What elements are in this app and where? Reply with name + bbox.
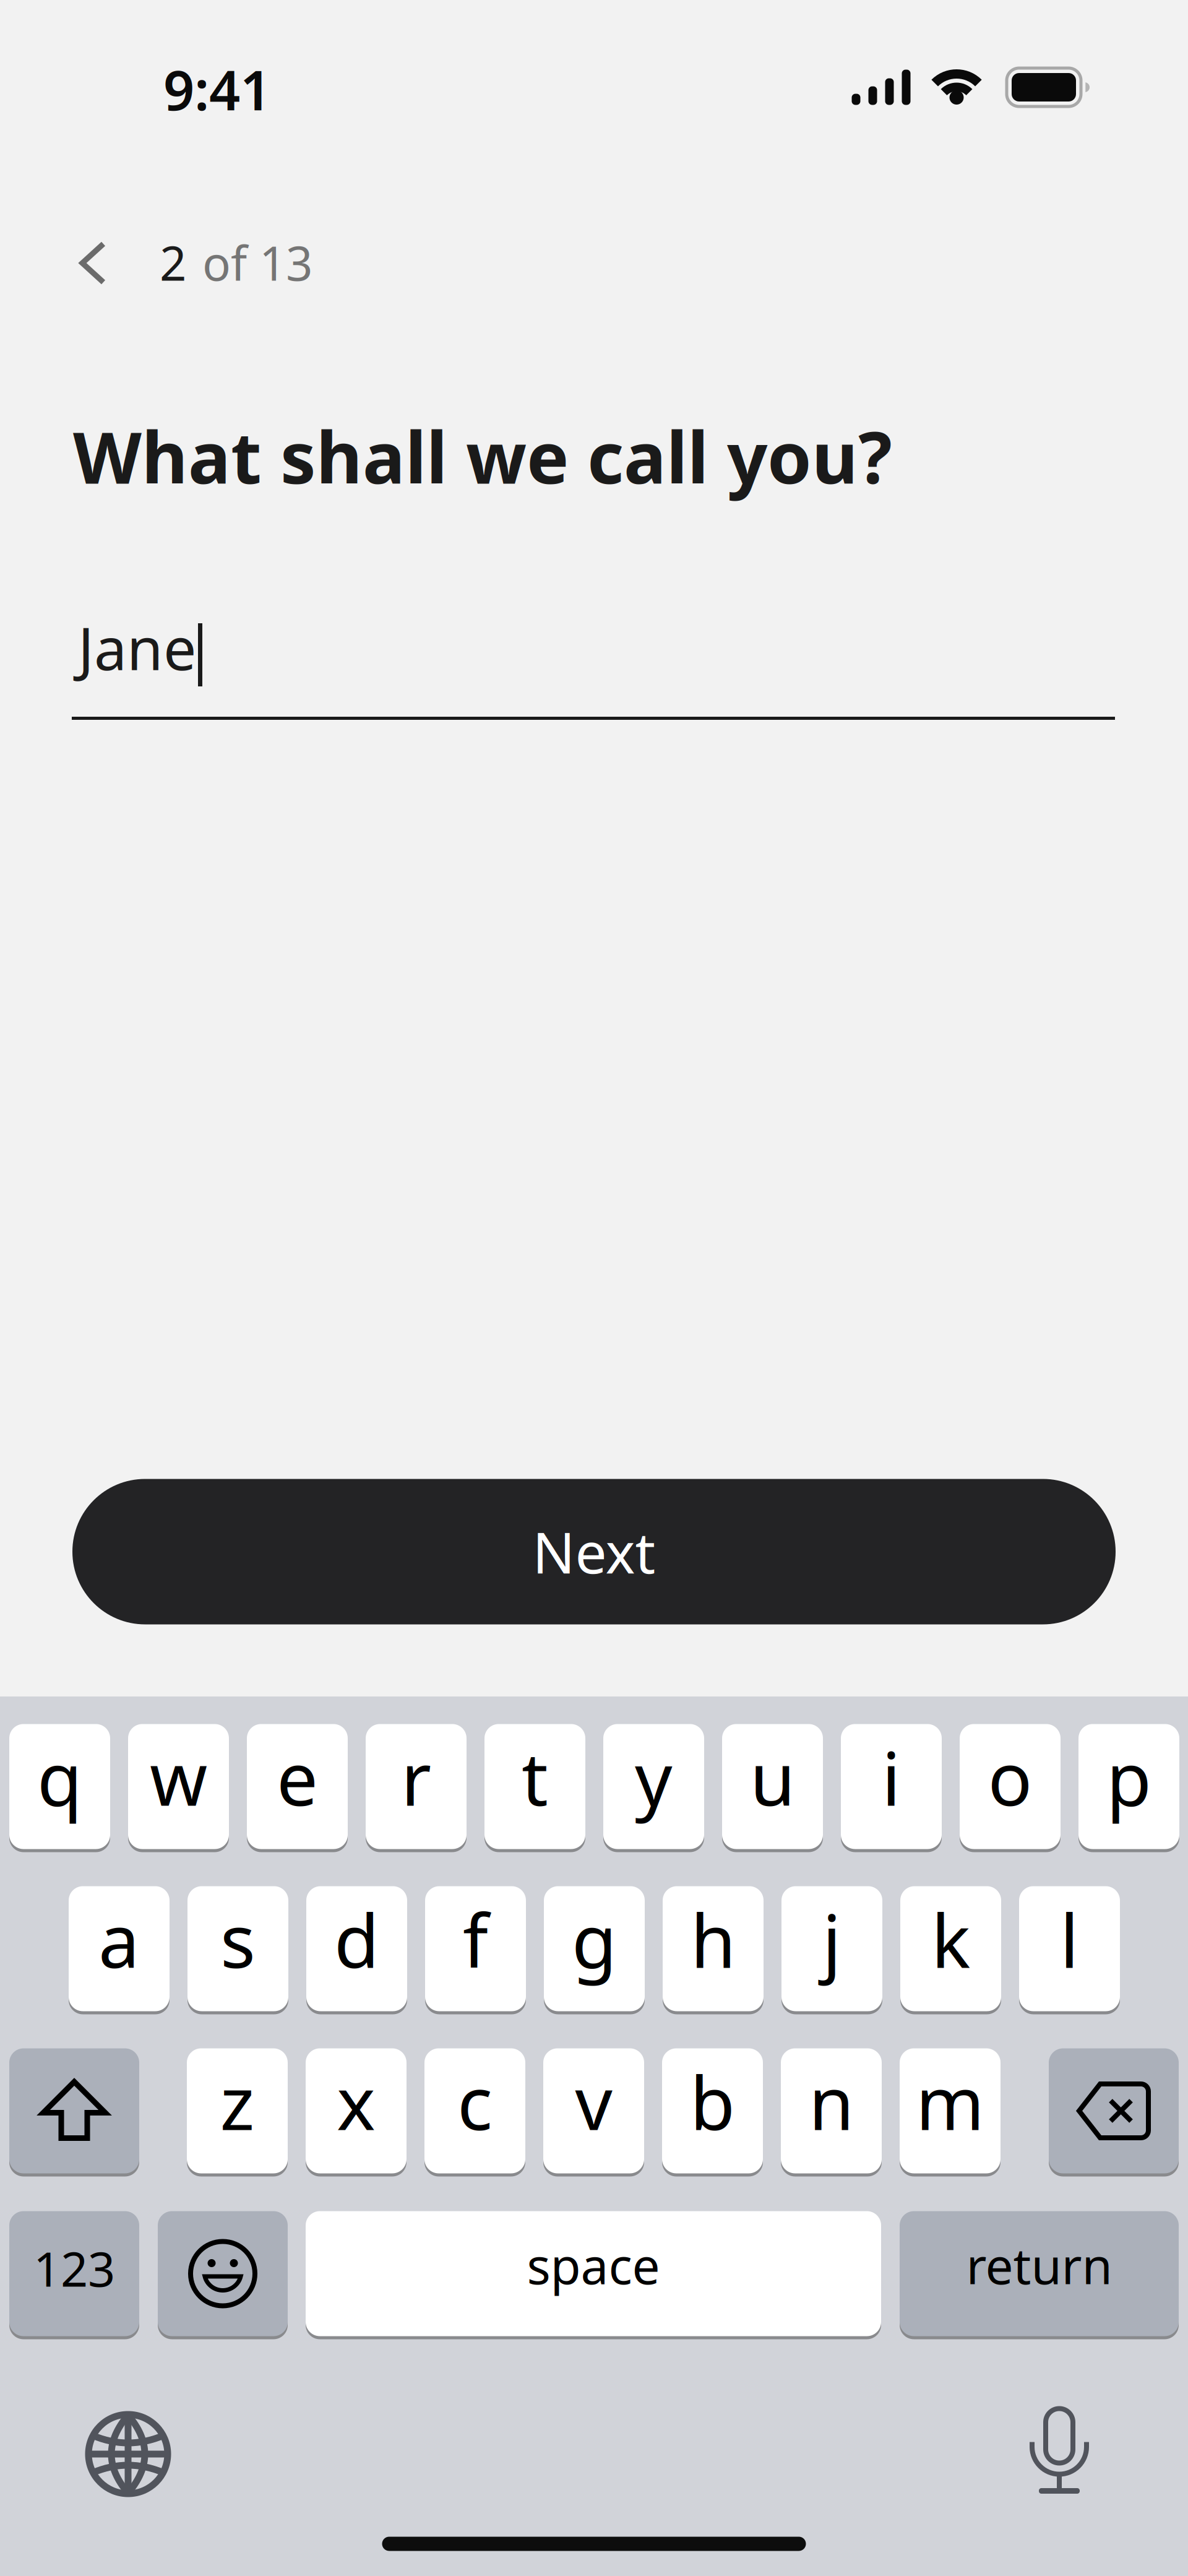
button[interactable]: c: [424, 2047, 525, 2175]
staticText: Next: [532, 1514, 656, 1589]
button[interactable]: Back: [64, 235, 120, 291]
staticText: z: [220, 2053, 255, 2150]
staticText: c: [457, 2053, 493, 2150]
staticText: o: [988, 1728, 1032, 1826]
staticText: q: [37, 1728, 82, 1826]
staticText: of 13: [202, 231, 312, 294]
staticText: return: [966, 2232, 1112, 2298]
button[interactable]: k: [900, 1885, 1001, 2013]
button[interactable]: o: [960, 1722, 1061, 1851]
button[interactable]: j: [781, 1885, 882, 2013]
button[interactable]: h: [663, 1885, 764, 2013]
staticText: i: [882, 1728, 901, 1826]
staticText: u: [750, 1728, 795, 1826]
button[interactable]: f: [425, 1885, 526, 2013]
button[interactable]: Dictation: [1022, 2407, 1096, 2497]
button[interactable]: 123: [9, 2210, 139, 2338]
staticText: d: [334, 1891, 379, 1988]
staticText: space: [527, 2232, 660, 2298]
button[interactable]: u: [722, 1722, 823, 1851]
button[interactable]: i: [841, 1722, 942, 1851]
button[interactable]: z: [187, 2047, 288, 2175]
button[interactable]: Name: [72, 619, 1115, 720]
staticText: f: [463, 1891, 488, 1988]
button[interactable]: v: [543, 2047, 644, 2175]
button[interactable]: y: [603, 1722, 704, 1851]
button[interactable]: m: [900, 2047, 1001, 2175]
button[interactable]: Next: [72, 1479, 1116, 1624]
button[interactable]: space: [306, 2210, 881, 2338]
staticText: 123: [33, 2236, 115, 2300]
staticText: r: [401, 1728, 431, 1826]
staticText: h: [691, 1891, 736, 1988]
staticText: w: [150, 1728, 207, 1826]
staticText: g: [572, 1891, 617, 1988]
staticText: x: [337, 2053, 376, 2150]
button[interactable]: Shift: [9, 2047, 139, 2175]
button[interactable]: n: [781, 2047, 882, 2175]
staticText: What shall we call you?: [73, 409, 892, 503]
button[interactable]: l: [1019, 1885, 1120, 2013]
button[interactable]: d: [306, 1885, 407, 2013]
staticText: m: [916, 2053, 984, 2150]
button[interactable]: t: [484, 1722, 585, 1851]
staticText: k: [931, 1891, 970, 1988]
button[interactable]: x: [306, 2047, 407, 2175]
staticText: y: [635, 1728, 673, 1826]
button[interactable]: w: [128, 1722, 229, 1851]
button[interactable]: Emoji: [158, 2210, 288, 2338]
staticText: b: [690, 2053, 735, 2150]
button[interactable]: a: [69, 1885, 170, 2013]
staticText: s: [220, 1891, 256, 1988]
button[interactable]: g: [544, 1885, 645, 2013]
staticText: p: [1106, 1728, 1151, 1826]
button[interactable]: Delete: [1049, 2047, 1179, 2175]
button[interactable]: r: [366, 1722, 467, 1851]
button[interactable]: s: [187, 1885, 288, 2013]
staticText: e: [277, 1728, 318, 1826]
button[interactable]: return: [900, 2210, 1179, 2338]
staticText: 9:41: [163, 53, 271, 125]
button[interactable]: Next keyboard: [85, 2411, 171, 2497]
button[interactable]: e: [247, 1722, 348, 1851]
button[interactable]: b: [662, 2047, 763, 2175]
staticText: a: [98, 1891, 140, 1988]
staticText: Jane: [78, 608, 196, 686]
button[interactable]: p: [1078, 1722, 1179, 1851]
staticText: v: [575, 2053, 612, 2150]
button[interactable]: q: [9, 1722, 110, 1851]
staticText: j: [822, 1891, 841, 1988]
staticText: l: [1060, 1891, 1079, 1988]
staticText: 2: [160, 231, 186, 294]
staticText: n: [809, 2053, 854, 2150]
staticText: t: [522, 1728, 548, 1826]
